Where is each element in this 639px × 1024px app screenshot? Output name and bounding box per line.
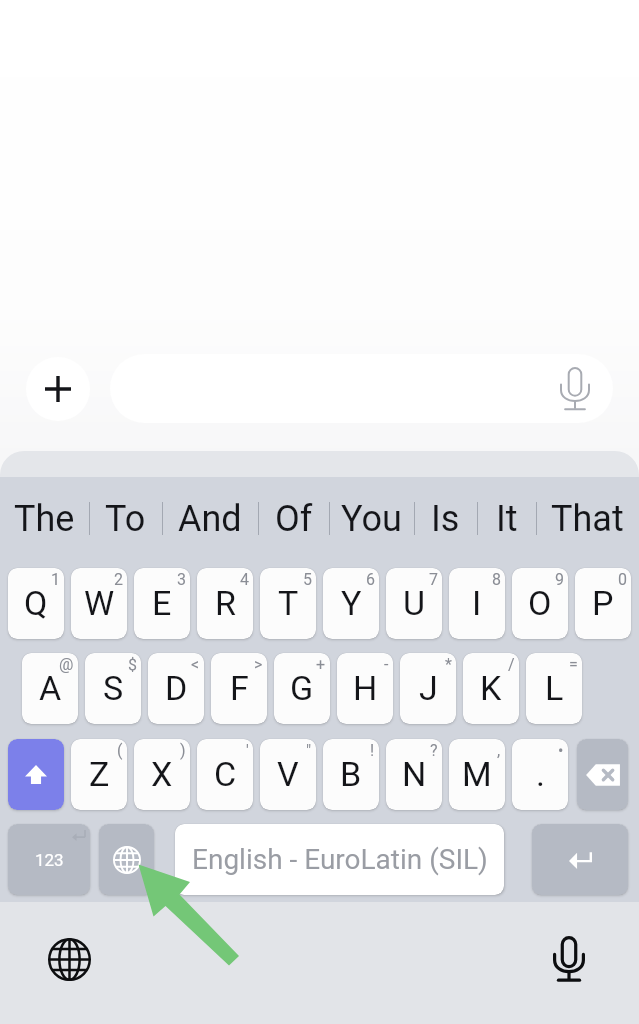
staticText: R — [215, 583, 236, 623]
button[interactable]: T — [260, 568, 316, 639]
staticText: W — [84, 583, 115, 623]
staticText: F — [230, 668, 249, 708]
button[interactable]: K — [463, 653, 519, 724]
staticText: Q — [24, 583, 48, 623]
staticText: / — [508, 655, 515, 674]
staticText: > — [254, 655, 263, 674]
staticText: Of — [275, 498, 313, 540]
staticText: 1 — [51, 570, 60, 589]
staticText: 9 — [555, 570, 564, 589]
staticText: @ — [59, 655, 74, 674]
button[interactable]: R — [197, 568, 253, 639]
button[interactable]: J — [400, 653, 456, 724]
button[interactable]: That — [536, 477, 639, 543]
button[interactable]: X — [134, 739, 190, 810]
staticText: 2 — [114, 570, 123, 589]
staticText: G — [290, 668, 314, 708]
button[interactable]: Enter — [532, 824, 628, 895]
button[interactable]: Voice input — [553, 367, 597, 411]
button[interactable]: English - EuroLatin (SIL) — [175, 824, 504, 895]
button[interactable]: Voice input — [110, 354, 613, 423]
staticText: M — [462, 754, 492, 794]
staticText: 8 — [492, 570, 501, 589]
button[interactable]: Z — [71, 739, 127, 810]
staticText: 123 — [35, 850, 64, 870]
staticText: 4 — [240, 570, 249, 589]
staticText: ( — [117, 741, 123, 760]
button[interactable]: Y — [323, 568, 379, 639]
button[interactable]: O — [512, 568, 568, 639]
staticText: You — [341, 498, 402, 540]
staticText: + — [316, 655, 326, 674]
staticText: ? — [430, 741, 438, 760]
staticText: = — [569, 655, 578, 674]
staticText: Y — [341, 583, 362, 623]
button[interactable]: Change keyboard — [40, 930, 98, 988]
staticText: A — [39, 668, 62, 708]
button[interactable]: N — [386, 739, 442, 810]
button[interactable]: You — [329, 477, 414, 543]
staticText: 0 — [618, 570, 627, 589]
button[interactable]: V — [260, 739, 316, 810]
button[interactable]: U — [386, 568, 442, 639]
button[interactable]: E — [134, 568, 190, 639]
button[interactable]: L — [526, 653, 582, 724]
button[interactable]: D — [148, 653, 204, 724]
button[interactable]: W — [71, 568, 127, 639]
staticText: . — [536, 754, 545, 794]
staticText: E — [152, 583, 172, 623]
staticText: - — [384, 655, 389, 674]
button[interactable]: S — [85, 653, 141, 724]
button[interactable]: Of — [258, 477, 329, 543]
staticText: $ — [128, 655, 137, 674]
button[interactable]: It — [477, 477, 536, 543]
staticText: To — [105, 498, 146, 540]
staticText: < — [191, 655, 200, 674]
button[interactable]: P — [575, 568, 631, 639]
staticText: X — [151, 754, 173, 794]
button[interactable]: And — [162, 477, 258, 543]
staticText: N — [402, 754, 427, 794]
staticText: • — [558, 741, 564, 760]
button[interactable]: 123 — [8, 824, 90, 895]
staticText: 5 — [303, 570, 312, 589]
staticText: V — [277, 754, 299, 794]
staticText: K — [480, 668, 502, 708]
staticText: J — [419, 668, 438, 708]
staticText: The — [14, 498, 75, 540]
button[interactable]: C — [197, 739, 253, 810]
staticText: Is — [431, 498, 460, 540]
button[interactable]: I — [449, 568, 505, 639]
staticText: 3 — [177, 570, 186, 589]
staticText: C — [214, 754, 237, 794]
button[interactable]: A — [22, 653, 78, 724]
button[interactable]: Switch language — [99, 824, 154, 895]
staticText: I — [472, 583, 482, 623]
staticText: * — [445, 655, 452, 674]
button[interactable]: The — [0, 477, 89, 543]
staticText: H — [353, 668, 378, 708]
button[interactable]: Q — [8, 568, 64, 639]
button[interactable]: M — [449, 739, 505, 810]
button[interactable]: Add attachment — [26, 357, 90, 421]
staticText: U — [403, 583, 426, 623]
staticText: O — [528, 583, 552, 623]
staticText: " — [306, 741, 312, 760]
button[interactable]: F — [211, 653, 267, 724]
staticText: 7 — [429, 570, 438, 589]
staticText: L — [545, 668, 564, 708]
button[interactable]: Shift — [8, 739, 64, 810]
staticText: English - EuroLatin (SIL) — [192, 843, 488, 876]
button[interactable]: . — [512, 739, 568, 810]
button[interactable]: B — [323, 739, 379, 810]
staticText: ! — [370, 741, 375, 760]
button[interactable]: H — [337, 653, 393, 724]
staticText: ) — [180, 741, 186, 760]
button[interactable]: Is — [414, 477, 477, 543]
button[interactable]: Delete — [577, 739, 628, 810]
staticText: 6 — [366, 570, 375, 589]
button[interactable]: Voice typing — [540, 930, 598, 988]
button[interactable]: To — [89, 477, 162, 543]
staticText: S — [103, 668, 124, 708]
button[interactable]: G — [274, 653, 330, 724]
